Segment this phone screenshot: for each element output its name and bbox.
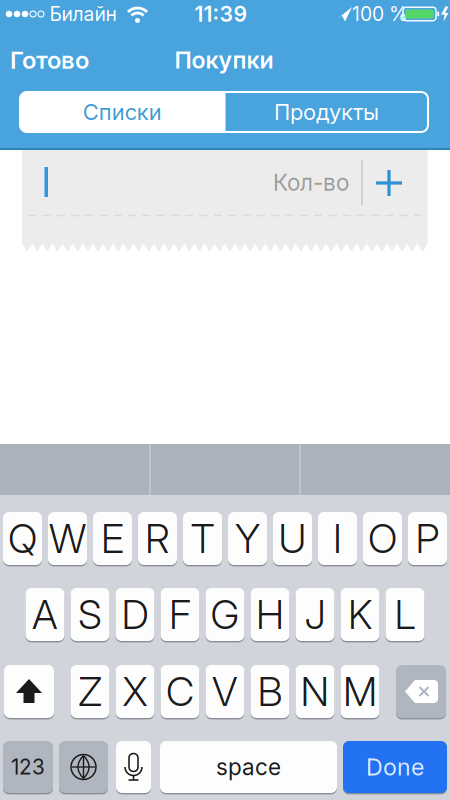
button[interactable]	[4, 664, 54, 719]
staticText: N	[300, 667, 329, 716]
staticText: M	[343, 667, 377, 716]
staticText: F	[169, 590, 191, 639]
button[interactable]: A	[25, 587, 64, 642]
staticText: Y	[235, 514, 260, 563]
button[interactable]: D	[115, 587, 154, 642]
button[interactable]	[1, 444, 149, 495]
button[interactable]: P	[408, 511, 447, 566]
staticText: space	[216, 753, 281, 781]
button[interactable]: Z	[70, 664, 109, 719]
button[interactable]: W	[48, 511, 87, 566]
staticText: 100 %	[352, 2, 408, 26]
staticText: A	[32, 590, 58, 639]
staticText: E	[101, 514, 124, 563]
staticText: U	[278, 514, 306, 563]
button[interactable]	[366, 160, 412, 206]
button[interactable]: O	[363, 511, 402, 566]
button[interactable]: R	[138, 511, 177, 566]
staticText: L	[394, 590, 415, 639]
button[interactable]: H	[250, 587, 289, 642]
button[interactable]: F	[160, 587, 199, 642]
button[interactable]: J	[295, 587, 334, 642]
staticText: I	[333, 514, 342, 563]
staticText: V	[212, 667, 238, 716]
button[interactable]: Готово	[10, 40, 160, 80]
button[interactable]: Списки	[20, 92, 224, 132]
staticText: W	[49, 514, 86, 563]
staticText: Билайн	[49, 2, 116, 26]
staticText: D	[121, 590, 148, 639]
button[interactable]: S	[70, 587, 109, 642]
button[interactable]: N	[295, 664, 334, 719]
button[interactable]: Y	[228, 511, 267, 566]
button[interactable]: E	[93, 511, 132, 566]
button[interactable]: 123	[3, 740, 53, 794]
button[interactable]	[59, 740, 108, 794]
staticText: Покупки	[174, 46, 273, 74]
staticText: Z	[78, 667, 102, 716]
staticText: O	[368, 514, 397, 563]
button[interactable]: L	[385, 587, 424, 642]
staticText: Done	[366, 753, 424, 781]
button[interactable]: Продукты	[224, 92, 428, 132]
button[interactable]: C	[160, 664, 199, 719]
staticText: S	[78, 590, 102, 639]
button[interactable]: T	[183, 511, 222, 566]
staticText: X	[122, 667, 147, 716]
button[interactable]	[116, 740, 151, 794]
staticText: P	[415, 514, 439, 563]
staticText: C	[166, 667, 194, 716]
button[interactable]	[151, 444, 299, 495]
button[interactable]: B	[250, 664, 289, 719]
staticText: Списки	[83, 99, 162, 125]
button[interactable]: G	[205, 587, 244, 642]
staticText: G	[210, 590, 239, 639]
button[interactable]: Done	[343, 740, 447, 794]
button[interactable]: I	[318, 511, 357, 566]
button[interactable]: space	[160, 740, 337, 794]
button[interactable]	[301, 444, 449, 495]
staticText: T	[190, 514, 214, 563]
button[interactable]	[396, 664, 446, 719]
staticText: J	[304, 590, 325, 639]
button[interactable]: Q	[3, 511, 42, 566]
staticText: H	[256, 590, 284, 639]
staticText: Q	[8, 514, 37, 563]
staticText: K	[348, 590, 372, 639]
staticText: 123	[11, 754, 45, 779]
button[interactable]: K	[340, 587, 379, 642]
staticText: 11:39	[194, 1, 247, 27]
staticText: Кол-во	[273, 169, 349, 196]
button[interactable]: M	[340, 664, 379, 719]
staticText: Готово	[10, 45, 89, 74]
staticText: R	[145, 514, 170, 563]
button[interactable]: X	[115, 664, 154, 719]
button[interactable]: Кол-во	[22, 152, 360, 213]
button[interactable]: V	[205, 664, 244, 719]
button[interactable]: U	[273, 511, 312, 566]
staticText: Продукты	[274, 99, 379, 125]
staticText: B	[257, 667, 282, 716]
